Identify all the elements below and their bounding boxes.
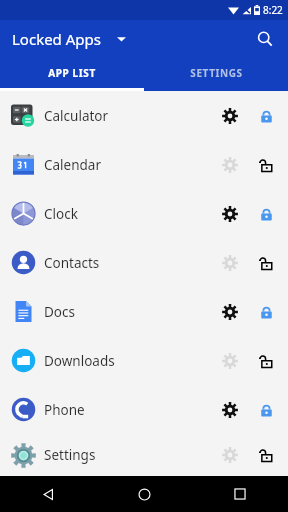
button[interactable]: Unlocked	[248, 343, 284, 379]
button[interactable]: Phone	[0, 385, 288, 434]
button[interactable]: APP LIST	[0, 58, 144, 88]
button[interactable]: Downloads	[0, 336, 288, 385]
button[interactable]: Home	[96, 476, 192, 512]
staticText: Settings	[44, 446, 96, 464]
button[interactable]: Locked	[248, 294, 284, 330]
button[interactable]: Docs	[0, 287, 288, 336]
button[interactable]: App settings	[212, 294, 248, 330]
button[interactable]: Settings	[0, 434, 288, 476]
staticText: Clock	[44, 205, 78, 223]
staticText: APP LIST	[48, 66, 96, 80]
button[interactable]: Contacts	[0, 238, 288, 287]
staticText: Docs	[44, 303, 75, 321]
button[interactable]: Back	[0, 476, 96, 512]
staticText: Contacts	[44, 254, 100, 272]
staticText: Calculator	[44, 107, 109, 125]
button[interactable]: App settings	[212, 196, 248, 232]
button[interactable]: Locked Apps	[10, 25, 128, 53]
button[interactable]: App settings	[212, 147, 248, 183]
staticText: Calendar	[44, 156, 101, 174]
button[interactable]: App settings	[212, 245, 248, 281]
button[interactable]: Unlocked	[248, 437, 284, 473]
button[interactable]: Recents	[192, 476, 288, 512]
button[interactable]: Clock	[0, 189, 288, 238]
staticText: Locked Apps	[12, 29, 101, 49]
button[interactable]: Unlocked	[248, 245, 284, 281]
staticText: 8:22	[263, 3, 283, 17]
staticText: Downloads	[44, 352, 115, 370]
button[interactable]: App settings	[212, 98, 248, 134]
button[interactable]: App settings	[212, 392, 248, 428]
staticText: Phone	[44, 401, 85, 419]
button[interactable]: Locked	[248, 98, 284, 134]
staticText: SETTINGS	[190, 66, 243, 80]
button[interactable]: App settings	[212, 437, 248, 473]
button[interactable]: Locked	[248, 392, 284, 428]
button[interactable]: SETTINGS	[144, 58, 288, 88]
button[interactable]: Locked	[248, 196, 284, 232]
button[interactable]: Calculator	[0, 91, 288, 140]
button[interactable]: Search	[250, 24, 280, 54]
button[interactable]: App settings	[212, 343, 248, 379]
button[interactable]: Unlocked	[248, 147, 284, 183]
button[interactable]: Calendar	[0, 140, 288, 189]
